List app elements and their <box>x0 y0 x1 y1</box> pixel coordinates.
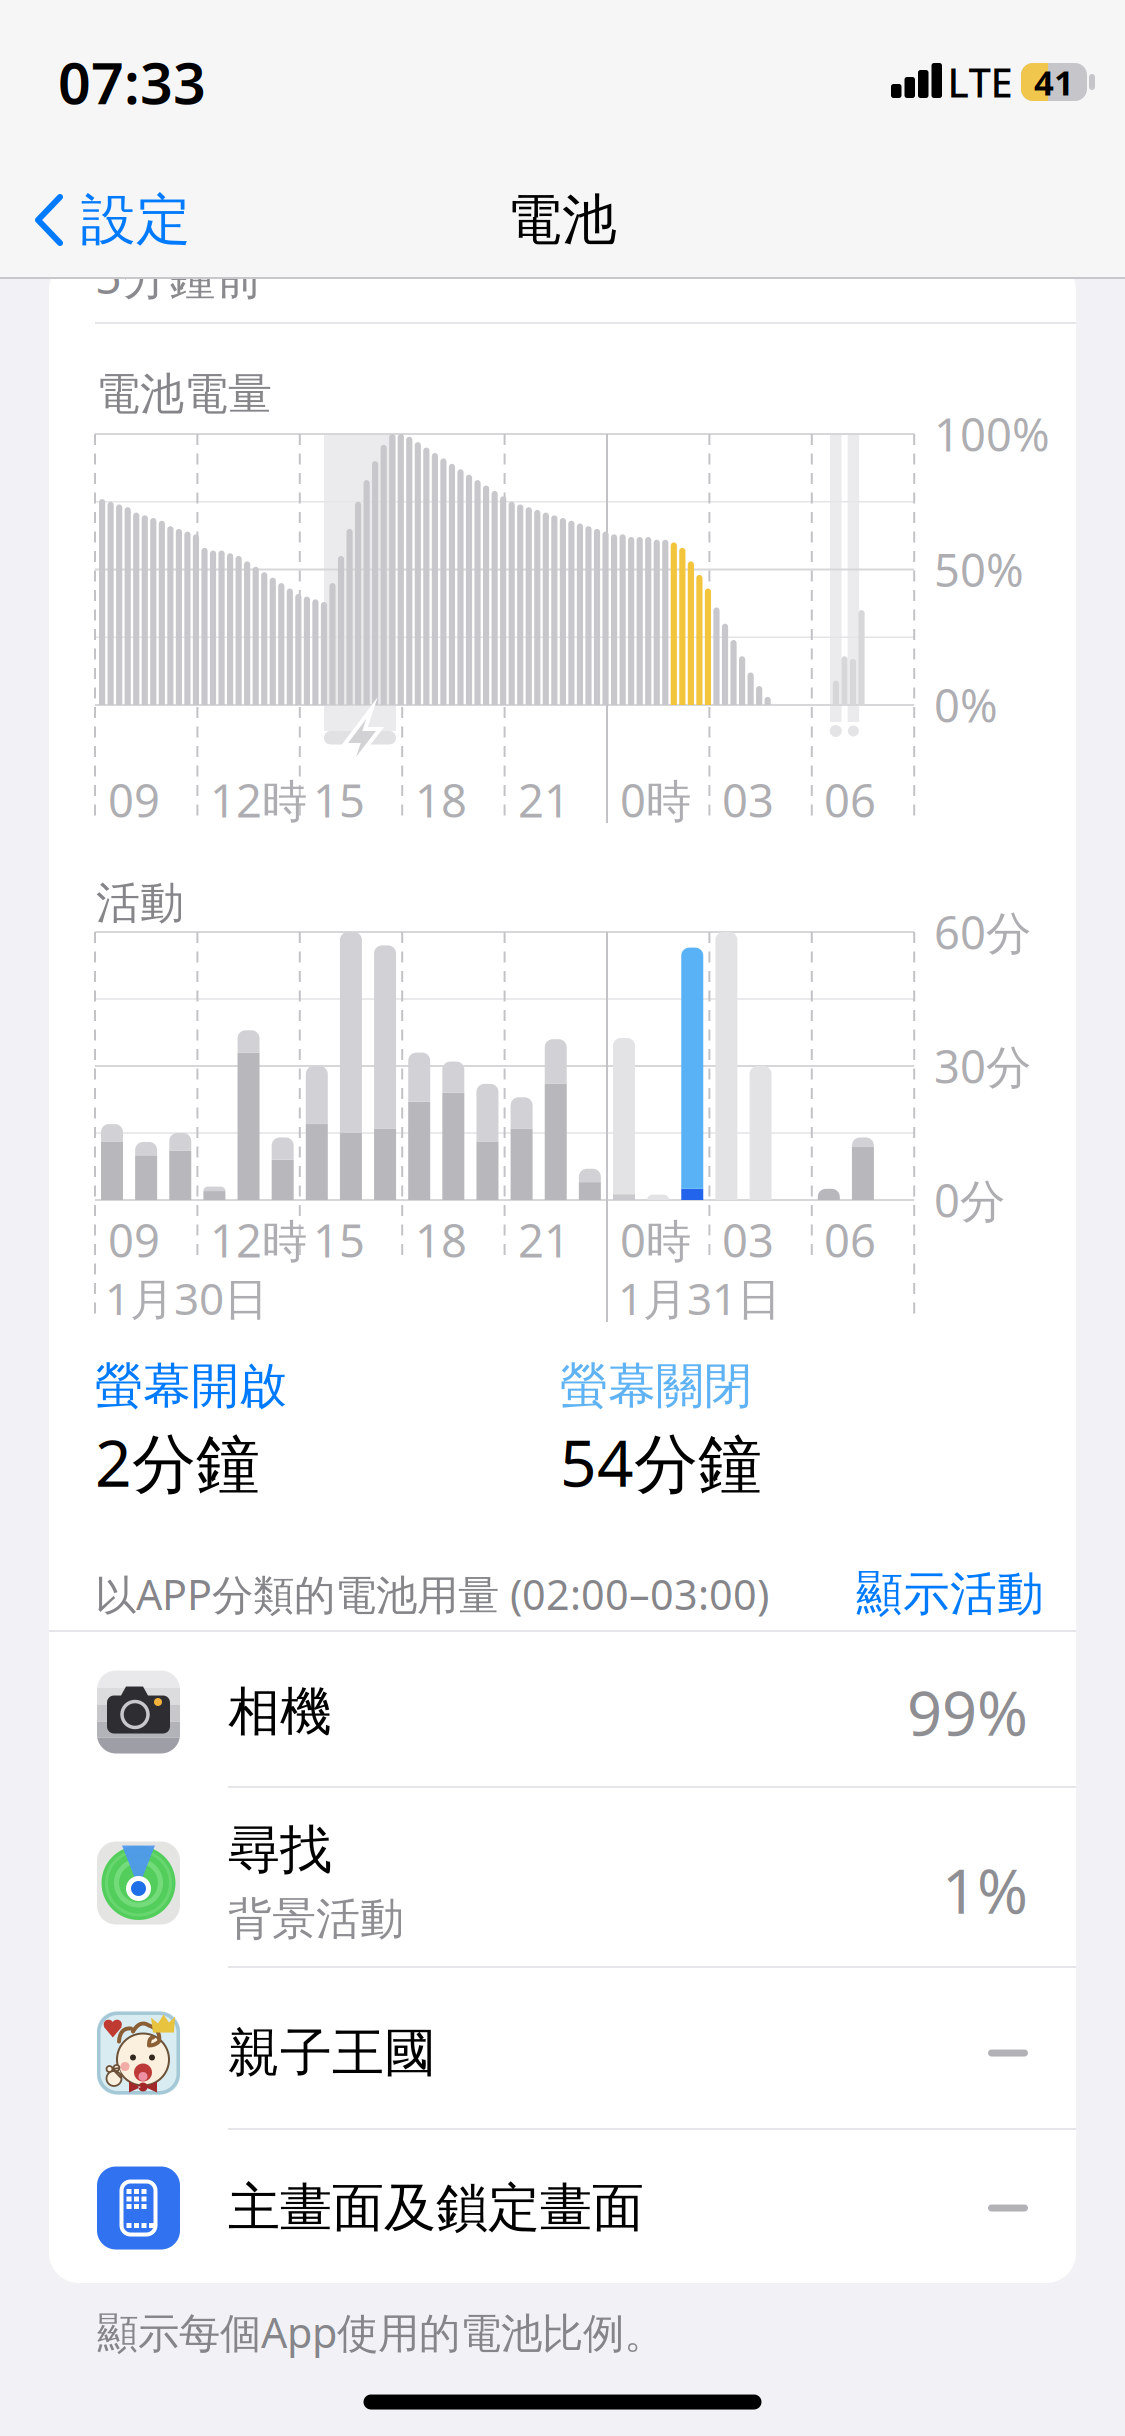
staticText: 0分 <box>934 1170 1005 1230</box>
staticText: 06 <box>824 1210 876 1270</box>
staticText: 親子王國 <box>228 2021 436 2085</box>
staticText: 03 <box>722 1210 774 1270</box>
staticText: 99% <box>907 1671 1028 1753</box>
staticText: 0時 <box>620 770 691 830</box>
staticText: 60分 <box>934 902 1031 962</box>
staticText: 1% <box>942 1849 1028 1931</box>
staticText: 螢幕開啟 <box>95 1356 287 1415</box>
staticText: 設定 <box>81 186 191 253</box>
staticText: 100% <box>934 404 1050 464</box>
staticText: 電池 <box>507 186 617 253</box>
staticText: 0% <box>934 675 998 735</box>
staticText: 09 <box>108 770 160 830</box>
button[interactable]: 設定 <box>30 176 260 264</box>
staticText: 主畫面及鎖定畫面 <box>228 2176 644 2240</box>
button[interactable]: 顯示活動 <box>850 1559 1050 1629</box>
staticText: 15 <box>313 1210 365 1270</box>
staticText: 2分鐘 <box>95 1419 260 1504</box>
staticText: 18 <box>415 770 467 830</box>
staticText: 5分鐘前 <box>95 245 263 307</box>
button[interactable]: 主畫面及鎖定畫面 <box>49 2130 1076 2283</box>
staticText: 1月31日 <box>618 1269 781 1327</box>
staticText: 50% <box>934 539 1024 600</box>
staticText: 電池電量 <box>96 367 272 421</box>
staticText: 背景活動 <box>228 1892 404 1946</box>
staticText: 12時 <box>210 770 307 830</box>
staticText: 21 <box>518 1210 570 1270</box>
staticText: 18 <box>415 1210 467 1270</box>
staticText: 活動 <box>96 876 184 930</box>
staticText: 以APP分類的電池用量 (02:00–03:00) <box>95 1567 769 1621</box>
staticText: 21 <box>518 770 570 830</box>
button[interactable]: 相機 <box>49 1631 1076 1787</box>
staticText: 06 <box>824 770 876 830</box>
staticText: 顯示每個App使用的電池比例。 <box>97 2305 665 2359</box>
staticText: 尋找 <box>228 1818 332 1882</box>
staticText: 顯示活動 <box>856 1565 1044 1623</box>
staticText: 41 <box>1034 59 1074 105</box>
staticText: LTE <box>947 55 1012 108</box>
staticText: 07:33 <box>58 44 206 120</box>
staticText: 30分 <box>934 1036 1031 1096</box>
staticText: 15 <box>313 770 365 830</box>
staticText: 12時 <box>210 1210 307 1270</box>
button[interactable]: 親子王國 <box>49 1968 1076 2130</box>
staticText: 1月30日 <box>105 1269 268 1327</box>
button[interactable]: 尋找 <box>49 1787 1076 1968</box>
staticText: 螢幕關閉 <box>560 1356 752 1415</box>
staticText: 54分鐘 <box>560 1419 762 1504</box>
staticText: 09 <box>108 1210 160 1270</box>
staticText: 相機 <box>228 1680 332 1744</box>
staticText: 03 <box>722 770 774 830</box>
staticText: 0時 <box>620 1210 691 1270</box>
